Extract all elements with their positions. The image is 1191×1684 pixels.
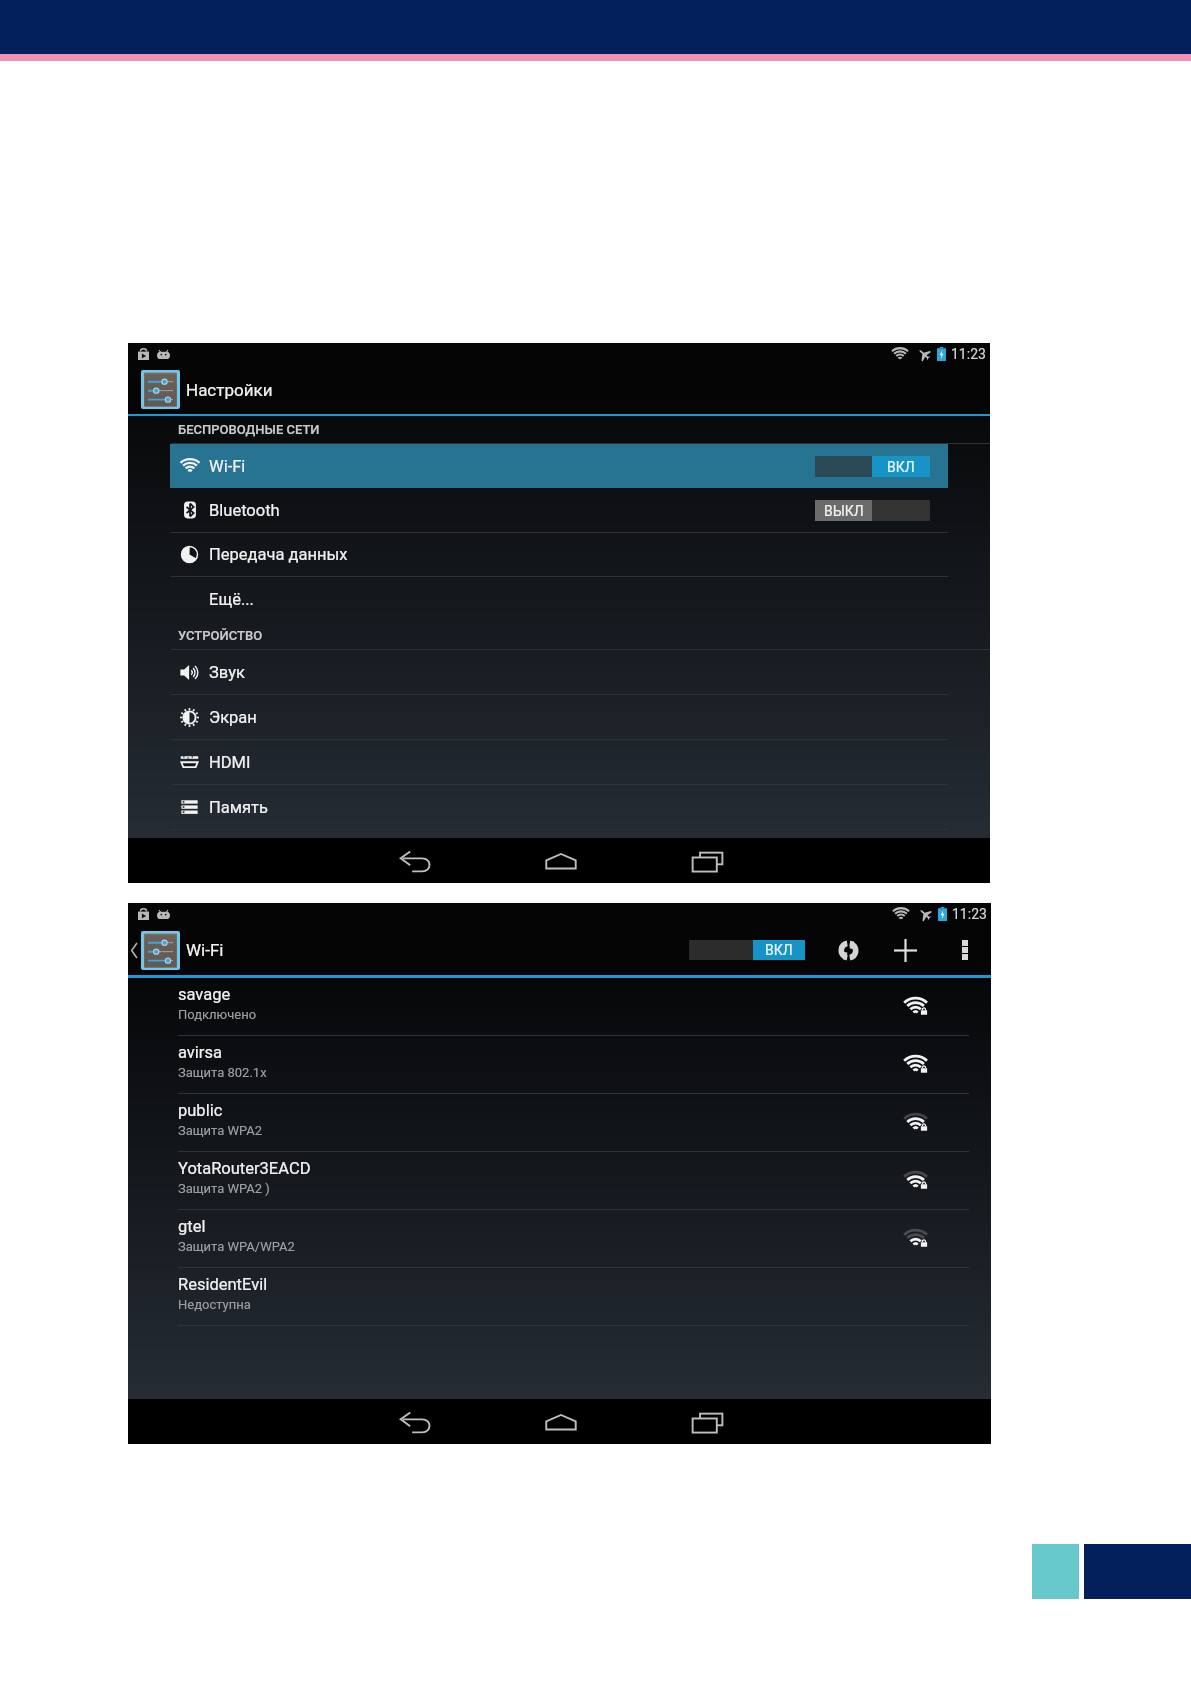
- button[interactable]: savage: [128, 978, 991, 1036]
- staticText: Wi-Fi: [209, 457, 246, 476]
- staticText: YotaRouter3EACD: [178, 1159, 311, 1178]
- staticText: gtel: [178, 1217, 206, 1236]
- staticText: savage: [178, 985, 231, 1004]
- staticText: 11:23: [952, 906, 987, 922]
- staticText: Bluetooth: [209, 501, 280, 520]
- button[interactable]: Bluetooth: [128, 488, 990, 532]
- button[interactable]: avirsa: [128, 1036, 991, 1094]
- button[interactable]: Recent apps: [685, 1400, 729, 1444]
- button[interactable]: Экран: [128, 695, 990, 739]
- button[interactable]: ВЫКЛ: [815, 500, 930, 521]
- button[interactable]: YotaRouter3EACD: [128, 1152, 991, 1210]
- staticText: Подключено: [178, 1007, 257, 1022]
- staticText: 11:23: [951, 346, 986, 362]
- staticText: БЕСПРОВОДНЫЕ СЕТИ: [178, 422, 320, 437]
- button[interactable]: Wi-Fi: [128, 444, 990, 488]
- staticText: Защита WPA2: [178, 1123, 263, 1138]
- staticText: ВЫКЛ: [824, 503, 864, 519]
- staticText: Настройки: [186, 380, 273, 400]
- button[interactable]: ResidentEvil: [128, 1268, 991, 1326]
- staticText: Память: [209, 798, 268, 817]
- button[interactable]: Add network: [885, 930, 925, 970]
- button[interactable]: Передача данных: [128, 533, 990, 576]
- button[interactable]: Память: [128, 785, 990, 829]
- staticText: Защита 802.1x: [178, 1065, 267, 1080]
- button[interactable]: Back: [128, 925, 141, 975]
- staticText: Недоступна: [178, 1297, 251, 1312]
- staticText: HDMI: [209, 753, 251, 772]
- button[interactable]: More options: [948, 933, 982, 967]
- button[interactable]: Back: [393, 839, 437, 883]
- button[interactable]: ВКЛ: [815, 456, 930, 477]
- staticText: ВКЛ: [765, 942, 793, 958]
- staticText: Защита WPA2 ): [178, 1181, 270, 1196]
- button[interactable]: Home: [539, 1400, 583, 1444]
- button[interactable]: ВКЛ: [689, 940, 805, 960]
- button[interactable]: Recent apps: [685, 839, 729, 883]
- staticText: Передача данных: [209, 545, 348, 564]
- button[interactable]: Back: [393, 1400, 437, 1444]
- button[interactable]: public: [128, 1094, 991, 1152]
- button[interactable]: WPS: [828, 930, 868, 970]
- staticText: avirsa: [178, 1043, 222, 1062]
- staticText: ResidentEvil: [178, 1275, 268, 1294]
- button[interactable]: Settings: [141, 931, 180, 970]
- staticText: Защита WPA/WPA2: [178, 1239, 295, 1254]
- staticText: Звук: [209, 663, 245, 682]
- staticText: Wi-Fi: [186, 940, 224, 960]
- button[interactable]: gtel: [128, 1210, 991, 1268]
- button[interactable]: Ещё...: [128, 577, 990, 621]
- button[interactable]: Звук: [128, 650, 990, 694]
- staticText: Экран: [209, 708, 257, 727]
- button[interactable]: Home: [539, 839, 583, 883]
- staticText: ВКЛ: [887, 459, 915, 475]
- button[interactable]: HDMI: [128, 740, 990, 784]
- staticText: Ещё...: [209, 590, 254, 609]
- staticText: public: [178, 1101, 223, 1120]
- button[interactable]: Settings: [141, 370, 180, 409]
- staticText: УСТРОЙСТВО: [178, 628, 263, 643]
